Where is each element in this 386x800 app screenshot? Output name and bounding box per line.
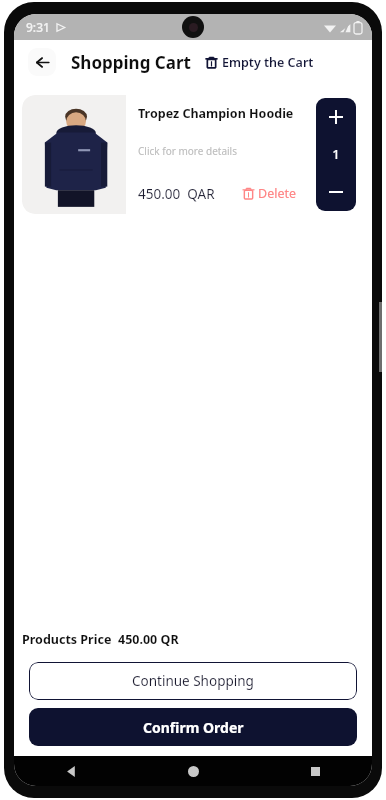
staticText: Click for more details — [138, 144, 237, 158]
staticText: Empty the Cart — [222, 54, 314, 71]
button[interactable]: Tropez Champion Hoodie — [22, 95, 364, 214]
button[interactable]: Continue Shopping — [29, 662, 357, 700]
staticText: 450.00 QR — [118, 631, 179, 648]
button[interactable]: Increase quantity — [316, 98, 356, 135]
button[interactable]: Home — [180, 758, 206, 784]
button[interactable]: Empty the Cart — [204, 51, 315, 74]
staticText: 450.00 QAR — [138, 185, 215, 203]
staticText: Delete — [258, 185, 297, 202]
button[interactable]: Decrease quantity — [316, 173, 356, 211]
staticText: 9:31 — [26, 19, 50, 35]
staticText: Continue Shopping — [132, 672, 254, 690]
button[interactable]: Back — [28, 48, 56, 76]
staticText: 1 — [332, 145, 340, 163]
staticText: Confirm Order — [143, 718, 244, 737]
button[interactable]: Back — [58, 758, 84, 784]
button[interactable]: Confirm Order — [29, 708, 357, 746]
staticText: Products Price — [22, 631, 112, 648]
button[interactable]: Recent apps — [302, 758, 328, 784]
button[interactable]: Delete — [241, 183, 298, 204]
staticText: Tropez Champion Hoodie — [138, 105, 294, 122]
staticText: Shopping Cart — [71, 51, 191, 74]
